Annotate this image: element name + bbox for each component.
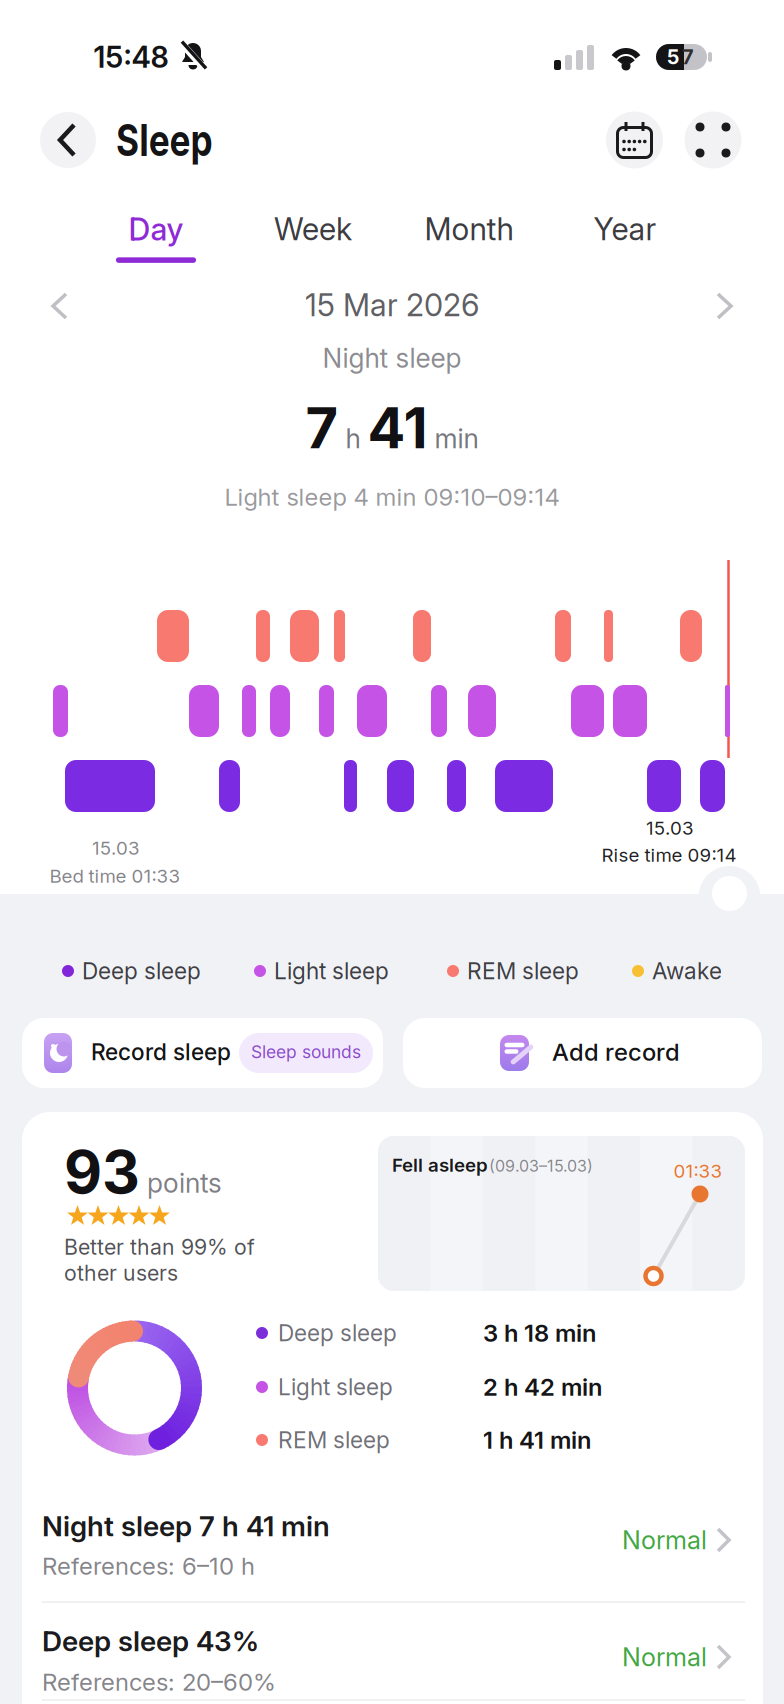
- staticText: Awake: [652, 958, 722, 984]
- staticText: Light sleep 4 min 09:10–09:14: [224, 483, 559, 511]
- button[interactable]: Calendar: [606, 111, 663, 168]
- staticText: Deep sleep: [278, 1320, 397, 1346]
- staticText: 5: [667, 45, 679, 69]
- staticText: 01:33: [673, 1160, 722, 1182]
- staticText: Sleep: [116, 114, 237, 166]
- button[interactable]: More: [684, 111, 741, 168]
- staticText: REM sleep: [278, 1427, 390, 1453]
- staticText: Month: [424, 211, 513, 247]
- staticText: 15:48: [93, 40, 168, 74]
- button[interactable]: Back: [40, 112, 96, 168]
- button[interactable]: Next day: [707, 292, 735, 320]
- staticText: Night sleep 7 h 41 min: [42, 1509, 330, 1542]
- staticText: Add record: [552, 1038, 680, 1066]
- staticText: other users: [64, 1260, 178, 1286]
- staticText: 93: [64, 1137, 140, 1207]
- button[interactable]: Day: [116, 211, 196, 263]
- staticText: points: [147, 1167, 222, 1199]
- staticText: Deep sleep: [82, 958, 201, 984]
- staticText: Bed time 01:33: [49, 865, 180, 887]
- staticText: References: 20–60%: [42, 1668, 276, 1696]
- staticText: (09.03–15.03): [489, 1157, 593, 1175]
- staticText: 15 Mar 2026: [305, 287, 479, 323]
- button[interactable]: Week: [274, 211, 352, 247]
- button[interactable]: Month: [424, 211, 513, 247]
- staticText: 15.03: [646, 817, 694, 839]
- staticText: Light sleep: [274, 958, 389, 984]
- button[interactable]: Previous day: [49, 292, 77, 320]
- staticText: Record sleep: [91, 1039, 231, 1065]
- button[interactable]: Night sleep 7 h 41 min: [22, 1497, 762, 1595]
- staticText: 41: [367, 395, 427, 461]
- staticText: Year: [593, 211, 656, 247]
- staticText: Day: [128, 211, 183, 247]
- button[interactable]: Record sleep: [22, 1018, 383, 1088]
- staticText: 3 h 18 min: [483, 1319, 596, 1347]
- staticText: REM sleep: [467, 958, 579, 984]
- staticText: 1 h 41 min: [483, 1426, 591, 1454]
- staticText: Night sleep: [322, 342, 461, 374]
- staticText: Normal: [622, 1525, 707, 1555]
- staticText: h: [338, 423, 367, 454]
- staticText: 2 h 42 min: [483, 1373, 602, 1401]
- staticText: Normal: [622, 1642, 707, 1672]
- staticText: min: [427, 423, 478, 454]
- staticText: Fell asleep: [392, 1154, 488, 1176]
- staticText: Deep sleep 43%: [42, 1624, 259, 1657]
- button[interactable]: Add record: [403, 1018, 762, 1088]
- staticText: 7: [305, 395, 338, 461]
- staticText: 15.03: [92, 837, 140, 859]
- staticText: Sleep sounds: [251, 1042, 361, 1062]
- staticText: Better than 99% of: [64, 1234, 255, 1260]
- button[interactable]: Year: [593, 211, 656, 247]
- staticText: Week: [274, 211, 352, 247]
- button[interactable]: Deep sleep 43%: [22, 1607, 762, 1704]
- staticText: Light sleep: [278, 1374, 393, 1400]
- staticText: References: 6–10 h: [42, 1552, 255, 1580]
- staticText: 7: [682, 45, 694, 69]
- staticText: Rise time 09:14: [601, 844, 736, 866]
